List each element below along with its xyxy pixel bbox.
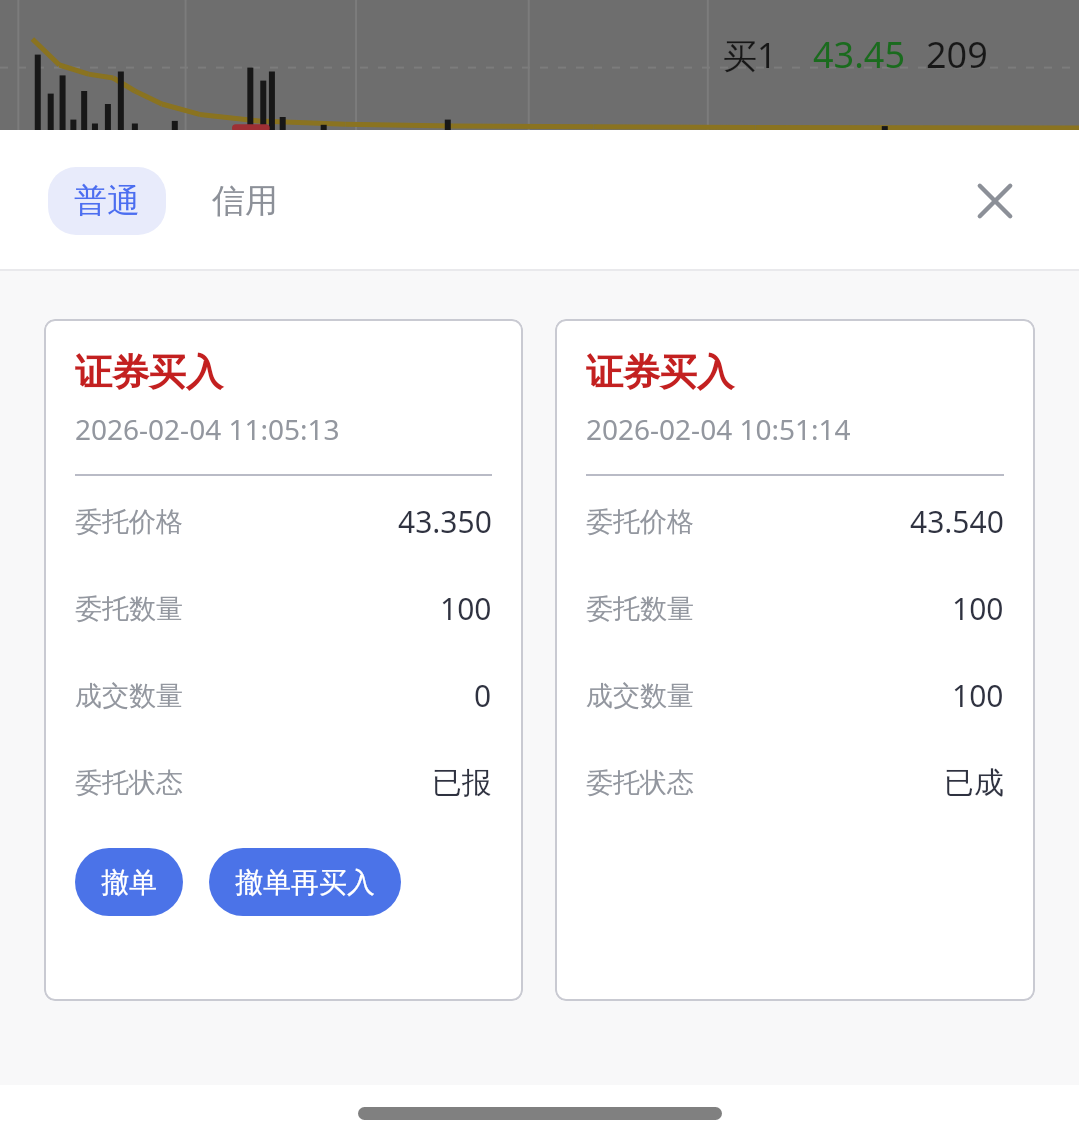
staticText: 普通 bbox=[74, 180, 140, 222]
button[interactable]: 证券买入 bbox=[555, 319, 1035, 1001]
button[interactable]: 信用 bbox=[200, 167, 290, 235]
staticText: 撤单 bbox=[101, 865, 157, 900]
staticText: 已成 bbox=[944, 764, 1004, 802]
button[interactable]: 证券买入 bbox=[44, 319, 523, 1001]
staticText: 2026-02-04 10:51:14 bbox=[586, 410, 851, 448]
staticText: 成交数量 bbox=[586, 679, 694, 713]
staticText: 43.350 bbox=[398, 501, 492, 542]
button[interactable]: 撤单再买入 bbox=[209, 848, 401, 916]
staticText: 撤单再买入 bbox=[235, 865, 375, 900]
staticText: 成交数量 bbox=[75, 679, 183, 713]
staticText: 100 bbox=[440, 588, 492, 629]
staticText: 证券买入 bbox=[586, 349, 734, 396]
staticText: 委托状态 bbox=[75, 766, 183, 800]
staticText: 43.45 bbox=[813, 30, 906, 79]
staticText: 买1 bbox=[723, 32, 777, 78]
staticText: 0 bbox=[474, 675, 492, 716]
staticText: 信用 bbox=[212, 180, 278, 222]
staticText: 委托数量 bbox=[586, 592, 694, 626]
staticText: 委托价格 bbox=[586, 505, 694, 539]
staticText: 证券买入 bbox=[75, 349, 223, 396]
staticText: 委托数量 bbox=[75, 592, 183, 626]
staticText: 100 bbox=[952, 588, 1004, 629]
staticText: 100 bbox=[952, 675, 1004, 716]
button[interactable]: 撤单 bbox=[75, 848, 183, 916]
button[interactable]: 普通 bbox=[48, 167, 166, 235]
staticText: 209 bbox=[926, 30, 988, 79]
staticText: 已报 bbox=[432, 764, 492, 802]
staticText: 43.540 bbox=[910, 501, 1004, 542]
staticText: 委托状态 bbox=[586, 766, 694, 800]
button[interactable]: Close bbox=[959, 165, 1031, 237]
staticText: 2026-02-04 11:05:13 bbox=[75, 410, 340, 448]
staticText: 委托价格 bbox=[75, 505, 183, 539]
